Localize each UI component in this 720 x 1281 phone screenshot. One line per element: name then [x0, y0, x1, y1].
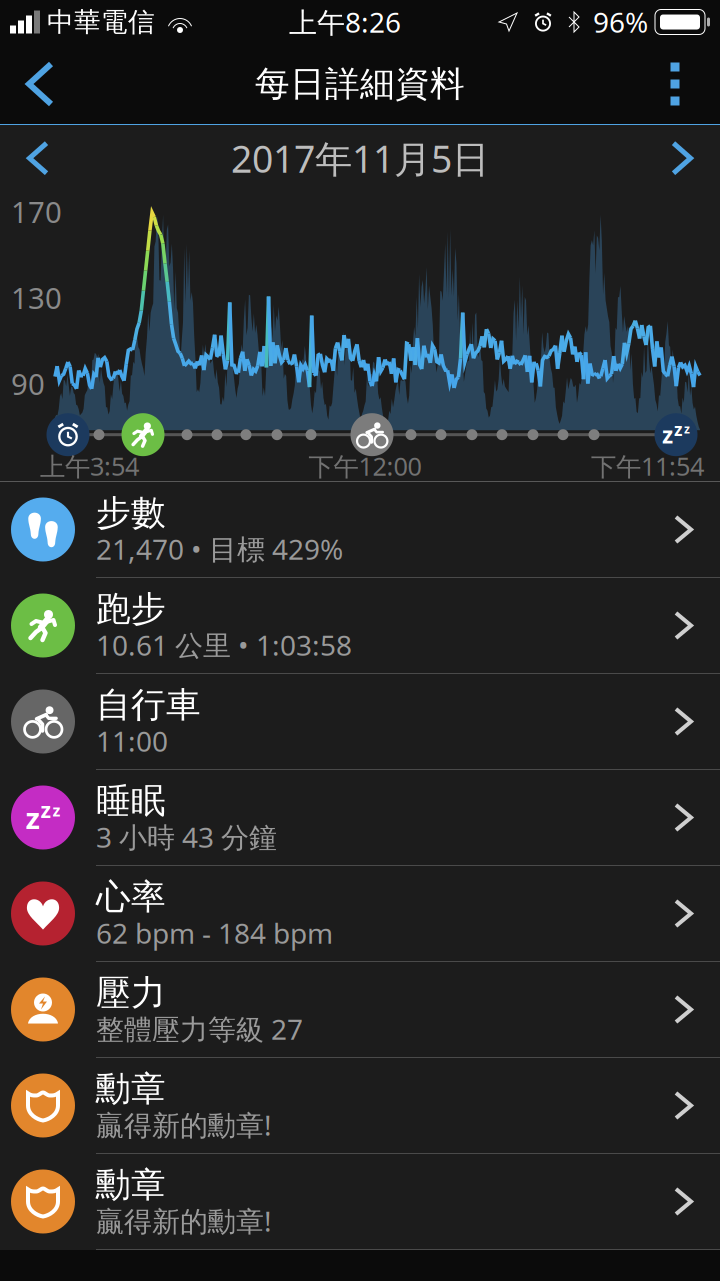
staticText: 贏得新的勳章! — [96, 1202, 272, 1239]
staticText: 跑步 — [96, 588, 166, 630]
staticText: 壓力 — [96, 972, 166, 1014]
button[interactable]: 壓力 — [0, 962, 720, 1058]
staticText: z — [52, 800, 60, 821]
staticText: 上午8:26 — [289, 3, 401, 41]
staticText: 贏得新的勳章! — [96, 1106, 272, 1143]
button[interactable]: 自行車 — [0, 674, 720, 770]
staticText: 62 bpm - 184 bpm — [96, 914, 333, 951]
staticText: 下午12:00 — [308, 449, 421, 483]
staticText: 中華電信 — [47, 6, 155, 38]
staticText: 10.61 公里 • 1:03:58 — [96, 626, 352, 663]
button[interactable]: 心率 — [0, 866, 720, 962]
staticText: 每日詳細資料 — [255, 63, 465, 105]
staticText: z — [674, 418, 683, 441]
staticText: z — [684, 421, 690, 437]
staticText: 下午11:54 — [591, 449, 704, 483]
staticText: 整體壓力等級 27 — [96, 1010, 303, 1047]
staticText: z — [25, 798, 39, 837]
staticText: 睡眠 — [96, 780, 166, 822]
staticText: 勳章 — [96, 1068, 166, 1110]
staticText: 上午3:54 — [40, 449, 139, 483]
button[interactable]: 步數 — [0, 482, 720, 578]
button[interactable]: Previous day — [0, 123, 76, 193]
staticText: 心率 — [96, 876, 166, 918]
staticText: z — [40, 796, 51, 824]
staticText: 21,470 • 目標 429% — [96, 530, 343, 567]
button[interactable]: Next day — [644, 123, 720, 193]
staticText: 2017年11月5日 — [231, 133, 489, 183]
staticText: 3 小時 43 分鐘 — [96, 818, 277, 855]
staticText: 170 — [11, 192, 62, 231]
staticText: 130 — [11, 278, 62, 317]
staticText: 自行車 — [96, 684, 201, 726]
button[interactable]: z — [0, 770, 720, 866]
button[interactable]: Back — [0, 44, 80, 124]
staticText: 96% — [593, 3, 648, 41]
staticText: 勳章 — [96, 1164, 166, 1206]
staticText: 步數 — [96, 492, 166, 534]
staticText: 90 — [11, 364, 45, 403]
button[interactable]: More options — [630, 44, 720, 124]
staticText: z — [662, 420, 673, 450]
staticText: 11:00 — [96, 722, 168, 759]
button[interactable]: 跑步 — [0, 578, 720, 674]
button[interactable]: 勳章 — [0, 1154, 720, 1250]
button[interactable]: 勳章 — [0, 1058, 720, 1154]
